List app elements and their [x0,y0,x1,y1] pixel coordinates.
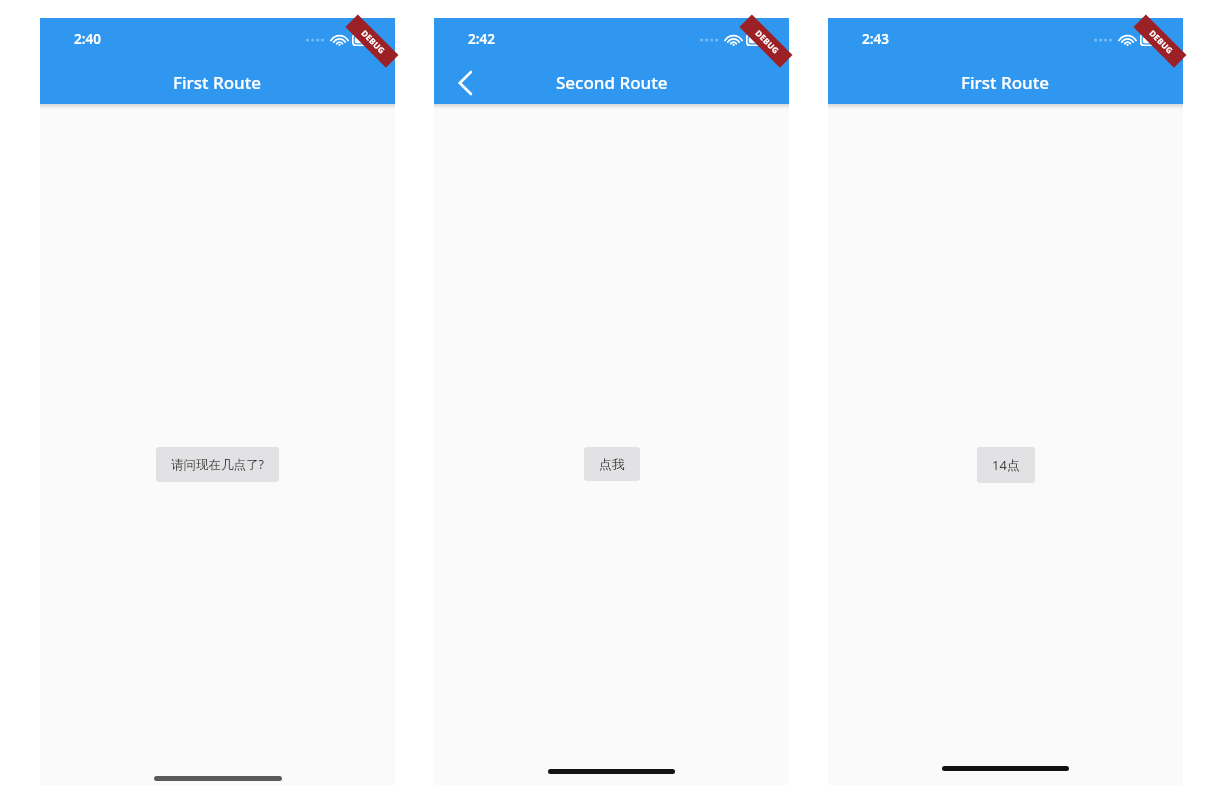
staticText: 请问现在几点了? [171,456,264,473]
staticText: 14点 [992,456,1020,474]
staticText: 2:43 [862,30,889,48]
staticText: First Route [961,71,1050,94]
staticText: Second Route [556,71,668,94]
button[interactable]: Back [442,62,488,104]
staticText: DEBUG [1147,27,1176,56]
staticText: DEBUG [753,27,782,56]
button[interactable]: 点我 [584,447,640,481]
staticText: 2:40 [74,30,101,48]
button[interactable]: 14点 [977,447,1035,483]
staticText: DEBUG [359,27,388,56]
button[interactable]: 请问现在几点了? [156,447,279,482]
staticText: First Route [173,71,262,94]
staticText: 点我 [599,456,625,472]
staticText: 2:42 [468,30,495,48]
